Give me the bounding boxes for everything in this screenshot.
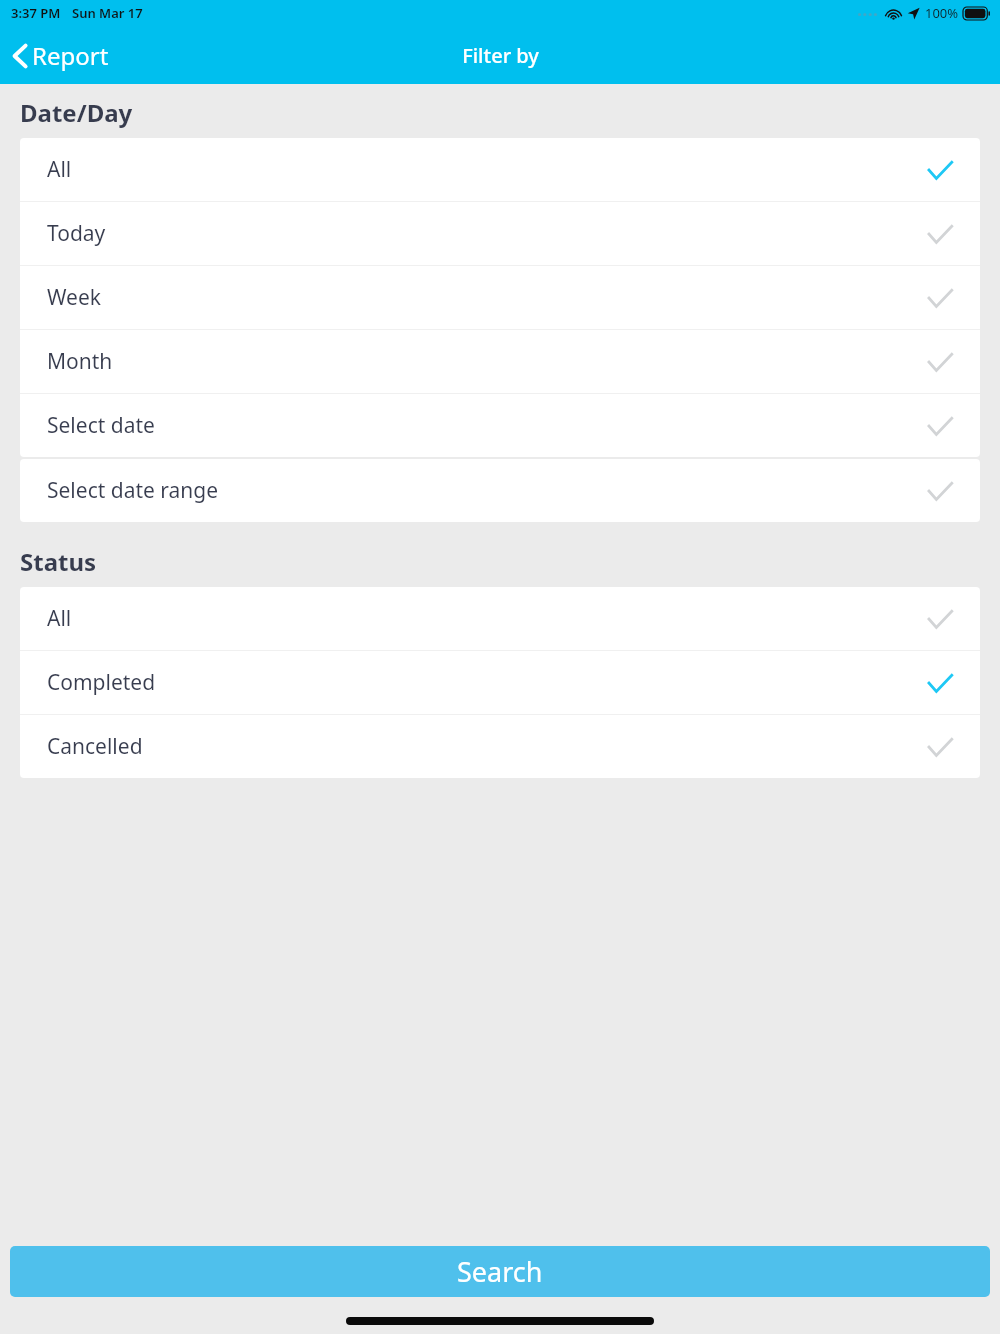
staticText: Completed [47,668,927,697]
button[interactable]: All [20,138,980,201]
other: Not selected [927,288,953,308]
staticText: 100% [925,4,959,22]
staticText: Search [457,1253,543,1290]
other: Selected [927,160,953,180]
button[interactable]: Select date [20,394,980,457]
staticText: Today [47,219,927,248]
other: Not selected [927,609,953,629]
staticText: Date/Day [20,96,133,129]
staticText: Report [32,39,109,72]
staticText: Select date range [47,476,927,505]
staticText: Week [47,283,927,312]
button[interactable]: Select date range [20,459,980,522]
other: Not selected [927,352,953,372]
button[interactable]: Today [20,202,980,265]
button[interactable]: Completed [20,651,980,714]
other: Not selected [927,224,953,244]
staticText: Status [20,545,97,578]
staticText: All [47,604,927,633]
button[interactable]: Week [20,266,980,329]
staticText: Filter by [462,42,539,69]
staticText: All [47,155,927,184]
other: Not selected [927,481,953,501]
staticText: Month [47,347,927,376]
button[interactable]: All [20,587,980,650]
other: Selected [927,673,953,693]
staticText: Cancelled [47,732,927,761]
button[interactable]: Search [10,1246,990,1297]
staticText: Sun Mar 17 [72,4,143,22]
staticText: 3:37 PM [11,4,61,22]
button[interactable]: Cancelled [20,715,980,778]
button[interactable]: Report [8,33,113,78]
staticText: Select date [47,411,927,440]
other: Not selected [927,416,953,436]
other: Not selected [927,737,953,757]
button[interactable]: Month [20,330,980,393]
